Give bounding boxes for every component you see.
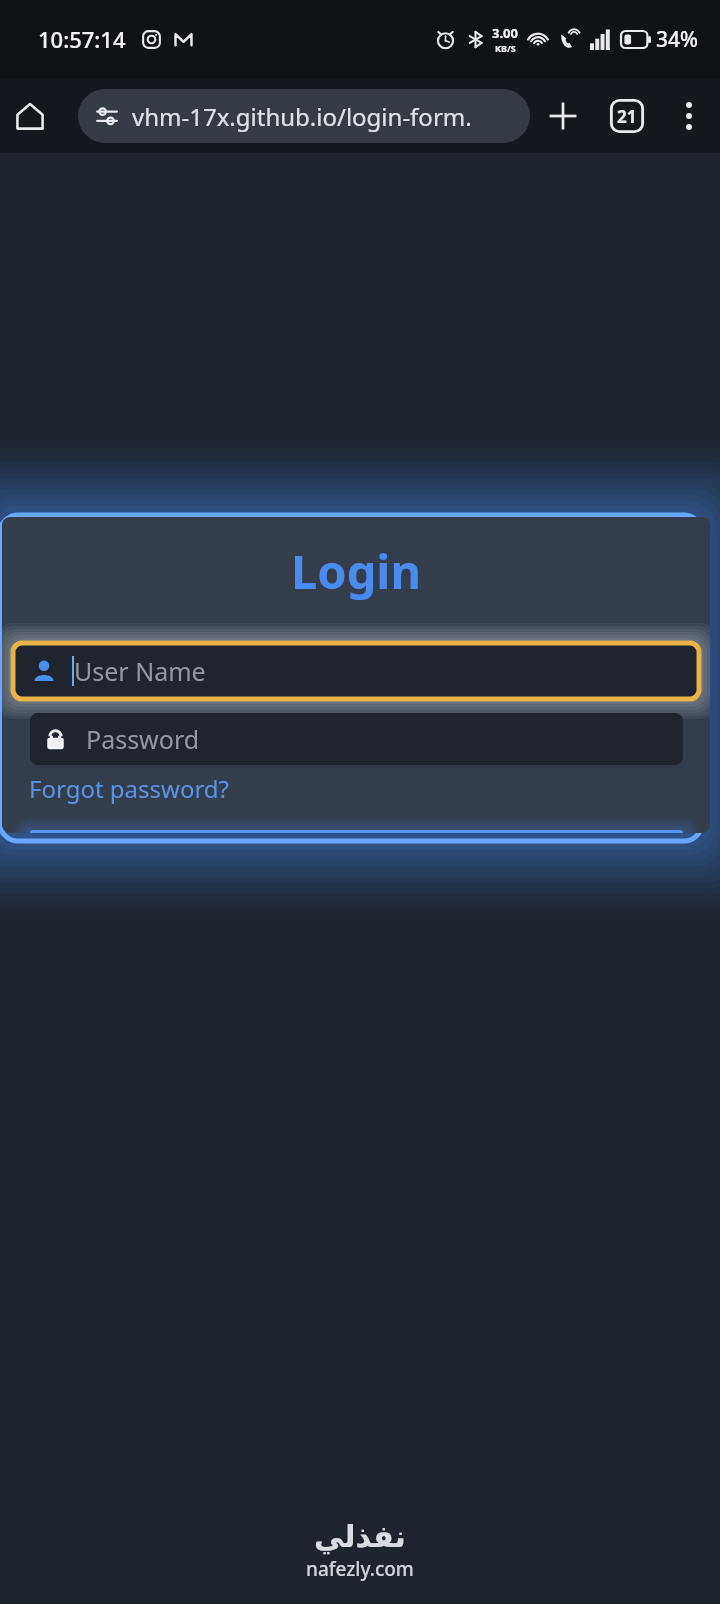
staticText: 34% xyxy=(656,25,698,54)
staticText: نفذلي xyxy=(314,1519,406,1554)
button[interactable]: Home xyxy=(0,86,60,146)
button[interactable]: Forgot password? xyxy=(29,772,230,805)
button[interactable]: User Name xyxy=(2,641,710,701)
button[interactable]: Tabs, 21 open xyxy=(596,85,658,147)
staticText: 10:57:14 xyxy=(38,24,126,54)
staticText: KB/S xyxy=(495,42,516,54)
button[interactable]: vhm-17x.github.io/login-form. xyxy=(78,89,530,143)
staticText: Login xyxy=(2,539,710,603)
button[interactable]: Password xyxy=(30,713,683,765)
button[interactable]: More options xyxy=(658,85,720,147)
staticText: Forgot password? xyxy=(29,772,230,805)
staticText: 21 xyxy=(617,105,637,128)
staticText: User Name xyxy=(74,654,206,688)
button[interactable]: New tab xyxy=(530,83,596,149)
staticText: vhm-17x.github.io/login-form. xyxy=(132,100,472,133)
staticText: nafezly.com xyxy=(306,1556,414,1582)
staticText: Password xyxy=(86,722,200,756)
staticText: 3.00 xyxy=(492,24,518,42)
